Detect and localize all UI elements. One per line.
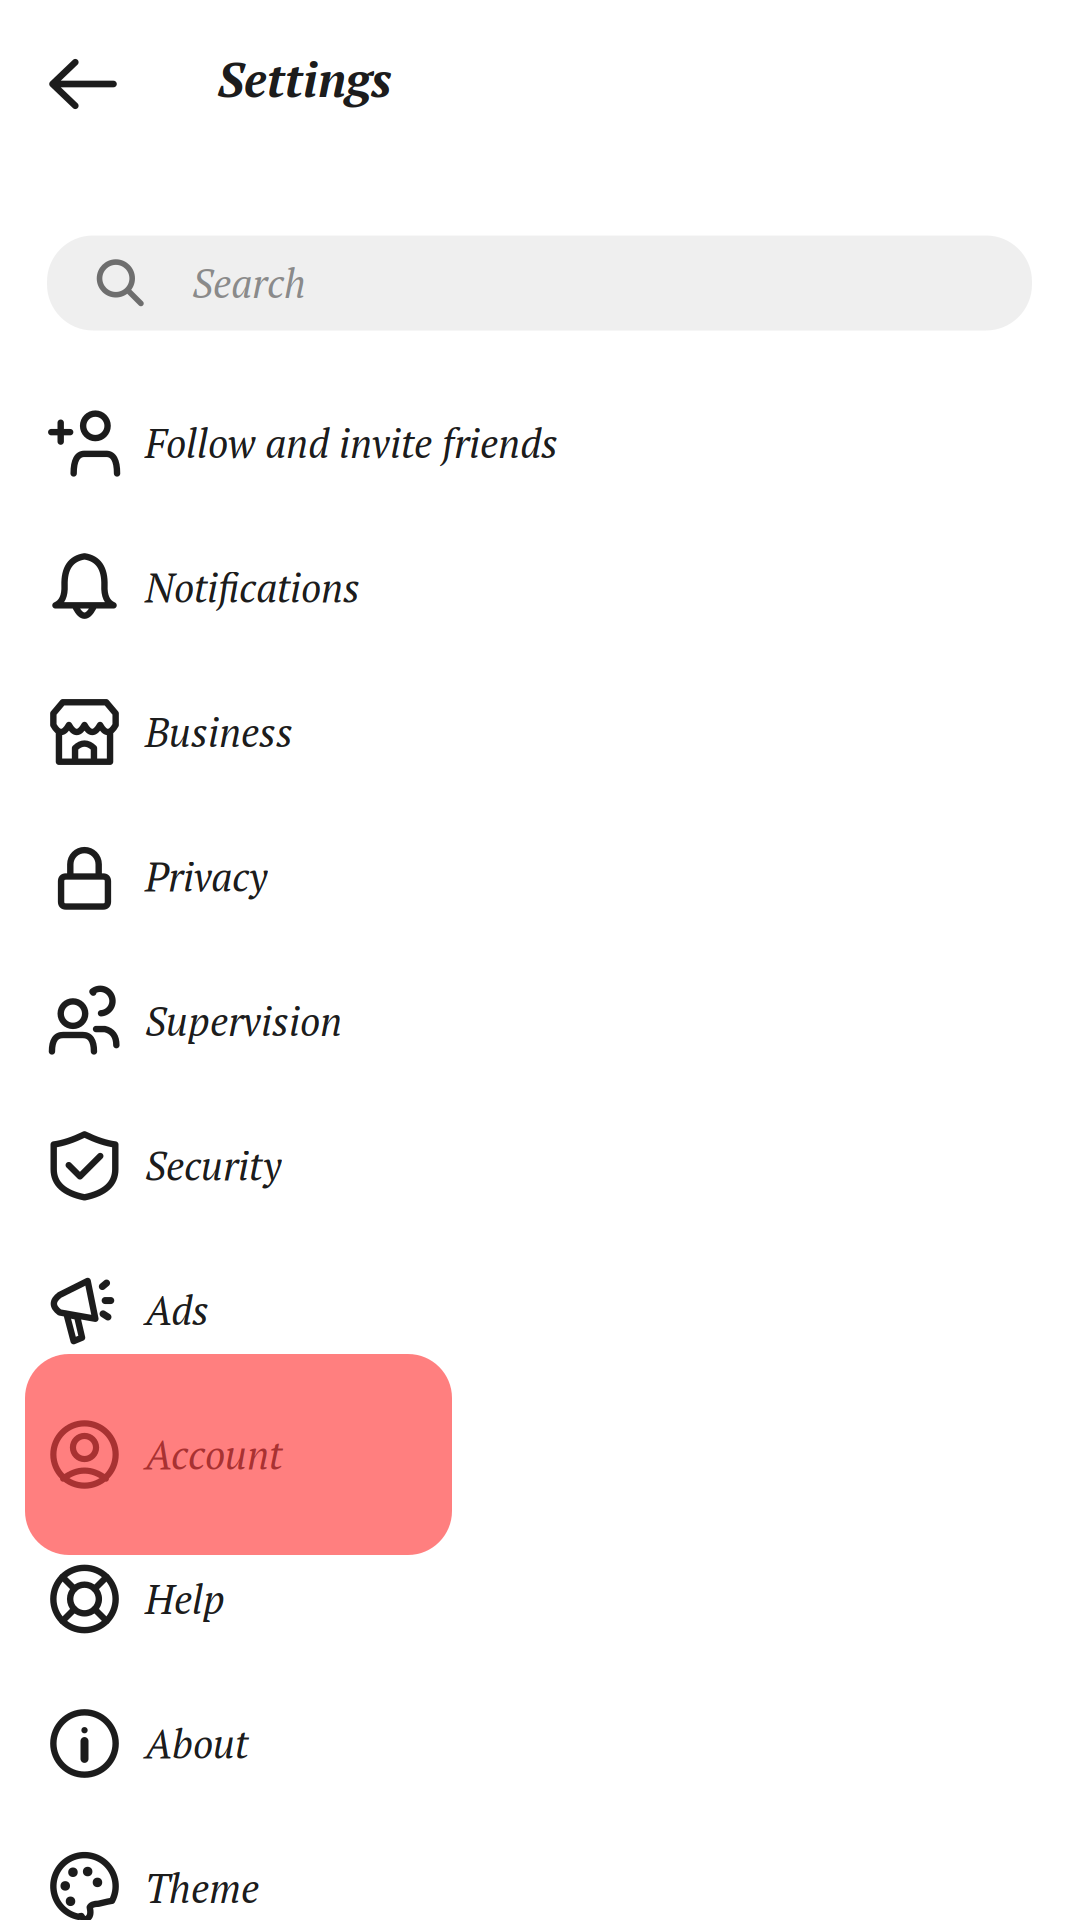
staticText: Business: [145, 705, 293, 758]
staticText: Account: [145, 1428, 282, 1481]
button[interactable]: Follow and invite friends: [0, 371, 1080, 515]
button[interactable]: Privacy: [0, 804, 1080, 949]
staticText: Privacy: [145, 850, 267, 903]
button[interactable]: Notifications: [0, 515, 1080, 660]
staticText: Notifications: [145, 561, 360, 614]
staticText: Ads: [145, 1283, 209, 1336]
button[interactable]: Account: [25, 1354, 452, 1555]
button[interactable]: Ads: [0, 1238, 1080, 1382]
button[interactable]: Search: [47, 235, 1032, 330]
staticText: About: [145, 1717, 248, 1770]
button[interactable]: Theme: [0, 1816, 1080, 1920]
button[interactable]: Supervision: [0, 949, 1080, 1093]
button[interactable]: Business: [0, 660, 1080, 804]
staticText: Theme: [145, 1861, 259, 1914]
staticText: Security: [145, 1139, 281, 1192]
button[interactable]: About: [0, 1671, 1080, 1816]
staticText: Supervision: [145, 994, 342, 1047]
staticText: Search: [192, 256, 306, 309]
button[interactable]: Security: [0, 1093, 1080, 1238]
button[interactable]: Back: [33, 34, 133, 134]
staticText: Settings: [217, 47, 392, 111]
staticText: Help: [145, 1572, 225, 1625]
staticText: Follow and invite friends: [145, 416, 558, 469]
button[interactable]: Help: [0, 1527, 1080, 1671]
